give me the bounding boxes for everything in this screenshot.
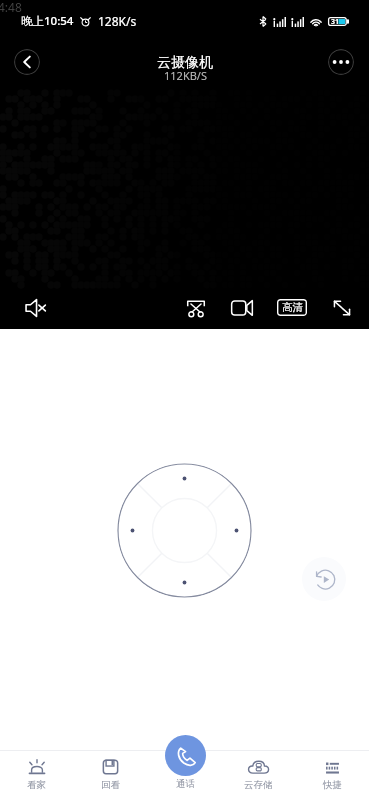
button[interactable]: Call xyxy=(165,735,206,776)
button[interactable]: Snapshot xyxy=(182,294,209,321)
button[interactable]: Mute xyxy=(22,294,49,321)
button[interactable]: Direction pad xyxy=(117,463,252,598)
button[interactable]: Record video xyxy=(228,294,255,321)
staticText: 31 xyxy=(331,17,340,26)
staticText: 回看 xyxy=(101,779,120,791)
button[interactable]: 高清 xyxy=(277,299,307,316)
staticText: 通话 xyxy=(176,778,195,790)
other: Playback xyxy=(102,759,119,775)
staticText: 4:48 xyxy=(0,0,22,15)
button[interactable]: Shortcuts xyxy=(295,750,369,800)
button[interactable]: Replay xyxy=(302,557,346,601)
button[interactable]: Home guard xyxy=(0,750,73,800)
button[interactable]: More options xyxy=(328,49,354,75)
button[interactable]: Playback xyxy=(73,750,147,800)
staticText: 128K/s xyxy=(98,13,137,29)
staticText: 云摄像机 xyxy=(157,54,213,72)
staticText: 晚上10:54 xyxy=(21,13,74,29)
other: Cloud storage xyxy=(247,759,270,775)
button[interactable]: Cloud storage xyxy=(221,750,295,800)
button[interactable]: Fullscreen xyxy=(328,294,355,321)
button[interactable]: Back xyxy=(14,49,40,75)
staticText: 快捷 xyxy=(323,779,342,791)
staticText: 云存储 xyxy=(244,779,273,791)
staticText: 看家 xyxy=(27,779,46,791)
staticText: 高清 xyxy=(282,301,303,314)
other: Shortcuts xyxy=(324,759,341,775)
other: Home guard xyxy=(28,759,46,775)
staticText: 112KB/S xyxy=(164,68,207,83)
